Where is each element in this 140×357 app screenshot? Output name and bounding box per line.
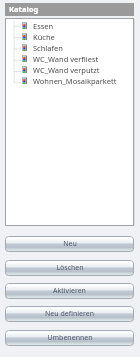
- button[interactable]: Katalog: [5, 3, 134, 16]
- button[interactable]: WC_Wand verfliest: [5, 53, 134, 64]
- button[interactable]: Neu: [5, 236, 134, 252]
- staticText: Aktivieren: [53, 286, 86, 296]
- staticText: Neu: [63, 239, 77, 249]
- button[interactable]: Neu definieren: [5, 306, 134, 322]
- button[interactable]: Essen: [5, 20, 134, 31]
- button[interactable]: Schlafen: [5, 42, 134, 53]
- staticText: Löschen: [56, 263, 84, 273]
- staticText: Katalog: [9, 4, 39, 14]
- button[interactable]: Wohnen_Mosaikparkett: [5, 75, 134, 86]
- button[interactable]: WC_Wand verputzt: [5, 64, 134, 75]
- staticText: Neu definieren: [45, 309, 94, 319]
- staticText: Küche: [33, 32, 55, 42]
- button[interactable]: Aktivieren: [5, 283, 134, 299]
- staticText: Essen: [33, 21, 54, 31]
- button[interactable]: Umbenennen: [5, 330, 134, 346]
- button[interactable]: Löschen: [5, 260, 134, 276]
- button[interactable]: Küche: [5, 31, 134, 42]
- staticText: WC_Wand verfliest: [33, 54, 99, 64]
- staticText: Wohnen_Mosaikparkett: [33, 76, 117, 86]
- staticText: Schlafen: [33, 43, 63, 53]
- staticText: WC_Wand verputzt: [33, 65, 100, 75]
- staticText: Umbenennen: [47, 333, 93, 343]
